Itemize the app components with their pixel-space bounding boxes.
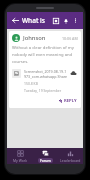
staticText: REPLY xyxy=(64,98,77,104)
staticText: nobody will even meaning and the various… xyxy=(12,52,78,58)
staticText: courses. xyxy=(12,59,29,65)
staticText: Without a clear definition of my school xyxy=(12,45,78,51)
staticText: Tuesday, 19 September 2019, 10:06 AM xyxy=(24,88,68,93)
staticText: 973_com.whatsapp.ShareActivity.png xyxy=(24,74,68,79)
button[interactable]: Download xyxy=(69,69,78,78)
staticText: What is the d… xyxy=(22,16,51,25)
staticText: My Work xyxy=(13,158,28,163)
button[interactable]: My Work xyxy=(7,148,33,164)
staticText: 150.8 KB xyxy=(24,81,38,86)
staticText: 10:06 AM xyxy=(62,36,78,41)
button[interactable]: Forum xyxy=(33,148,58,164)
button[interactable]: Johnson Chorie xyxy=(9,31,81,108)
button[interactable]: Notifications xyxy=(61,16,71,26)
button[interactable]: Attachment preview xyxy=(12,69,21,78)
staticText: Leaderboard xyxy=(60,158,81,163)
button[interactable]: Bookmark xyxy=(51,16,61,26)
staticText: Johnson Chorie xyxy=(23,34,62,42)
button[interactable]: Leaderboard xyxy=(58,148,83,164)
button[interactable]: More options xyxy=(71,16,80,25)
button[interactable]: REPLY xyxy=(58,97,78,105)
staticText: Screenshot_2019-08-19-10-01-20- xyxy=(24,69,68,74)
staticText: Forum xyxy=(40,158,51,163)
button[interactable]: Back xyxy=(10,15,21,26)
